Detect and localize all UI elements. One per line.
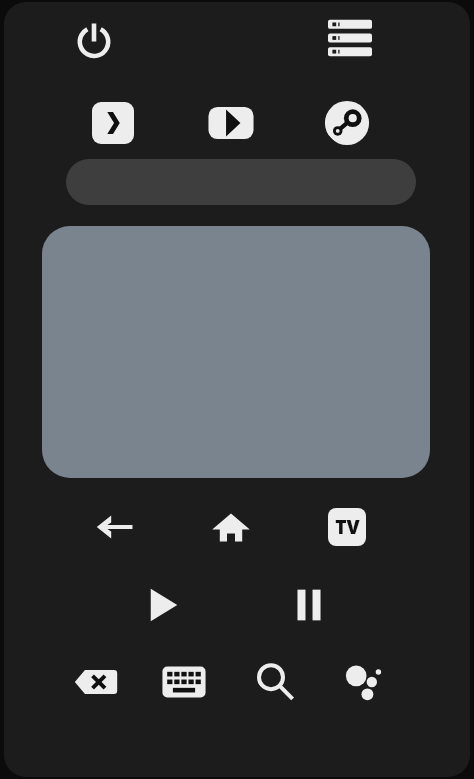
button[interactable]: Backspace bbox=[66, 652, 126, 712]
button[interactable]: Power bbox=[66, 12, 122, 68]
button[interactable]: Home bbox=[202, 498, 260, 556]
button[interactable]: Play bbox=[134, 576, 192, 634]
button[interactable]: Search bbox=[245, 652, 305, 712]
button[interactable]: Text input bbox=[66, 159, 416, 205]
button[interactable]: Devices bbox=[320, 8, 380, 68]
button[interactable]: Pause bbox=[280, 576, 338, 634]
button[interactable]: YouTube bbox=[200, 92, 262, 154]
staticText: TV bbox=[335, 514, 360, 540]
button[interactable]: TV input bbox=[318, 498, 376, 556]
button[interactable]: Steam bbox=[316, 92, 378, 154]
button[interactable]: Touchpad bbox=[42, 226, 430, 478]
button[interactable]: Back bbox=[86, 498, 144, 556]
button[interactable]: Keyboard bbox=[154, 652, 214, 712]
button[interactable]: Google Assistant bbox=[335, 652, 395, 712]
button[interactable]: Plex bbox=[82, 92, 144, 154]
